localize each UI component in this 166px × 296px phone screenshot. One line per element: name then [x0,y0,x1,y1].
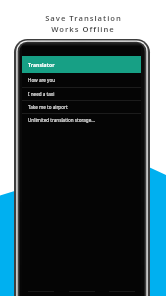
staticText: Save Translation [45,13,122,23]
button[interactable]: Translator [22,56,141,73]
staticText: Take me to airport [28,104,68,110]
staticText: I need a taxi [28,91,55,97]
staticText: Unlimited translation storage... [28,117,95,123]
staticText: How are you [28,77,56,83]
staticText: Works Offline [51,24,115,34]
staticText: Translator [28,62,55,69]
button[interactable]: I need a taxi [22,87,141,100]
button[interactable]: Unlimited translation storage... [22,113,141,126]
button[interactable]: Take me to airport [22,100,141,113]
button[interactable]: How are you [22,73,141,86]
